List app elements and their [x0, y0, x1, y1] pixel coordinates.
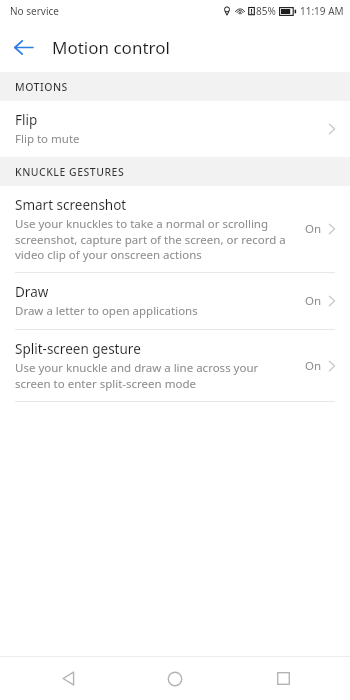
button[interactable]: Split-screen gesture: [0, 330, 350, 401]
staticText: Draw a letter to open applications: [15, 303, 198, 319]
button[interactable]: Back: [28, 657, 108, 700]
staticText: MOTIONS: [15, 80, 68, 94]
staticText: Flip to mute: [15, 131, 80, 147]
staticText: Motion control: [52, 36, 170, 59]
button[interactable]: Back: [5, 29, 41, 65]
staticText: On: [305, 293, 322, 309]
staticText: KNUCKLE GESTURES: [15, 165, 125, 179]
staticText: Flip: [15, 111, 38, 129]
button[interactable]: Smart screenshot: [0, 186, 350, 272]
button[interactable]: Draw: [0, 273, 350, 329]
staticText: Smart screenshot: [15, 196, 127, 214]
button[interactable]: Flip: [0, 101, 350, 157]
staticText: 11:19 AM: [300, 4, 344, 18]
button[interactable]: Home: [135, 657, 215, 700]
staticText: Use your knuckle and draw a line across …: [15, 360, 295, 391]
staticText: 85%: [256, 4, 276, 18]
button[interactable]: Recents: [243, 657, 323, 700]
staticText: On: [305, 221, 322, 237]
staticText: On: [305, 358, 322, 374]
staticText: No service: [10, 4, 59, 18]
staticText: Draw: [15, 283, 49, 301]
staticText: Use your knuckles to take a normal or sc…: [15, 216, 295, 262]
staticText: Split-screen gesture: [15, 340, 141, 358]
